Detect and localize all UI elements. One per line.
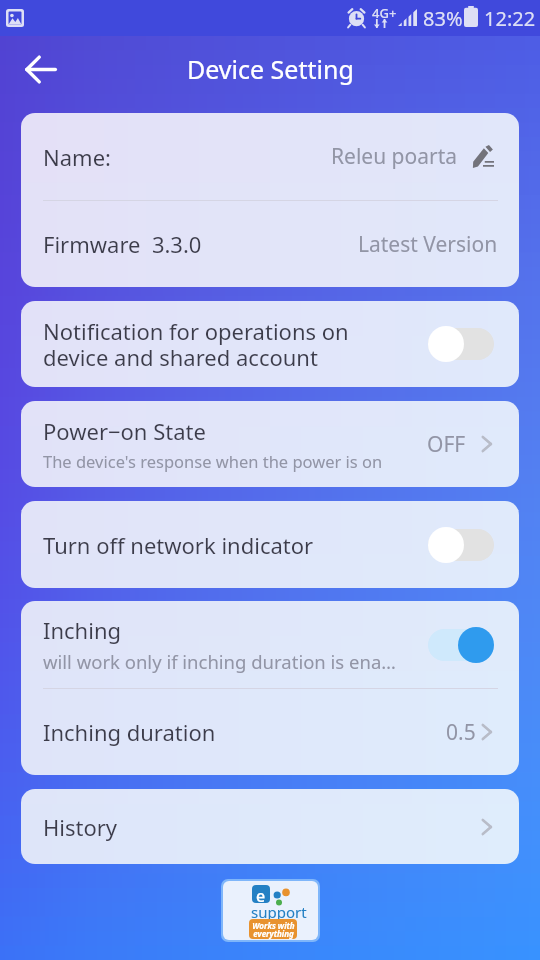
staticText: Latest Version (358, 230, 498, 259)
staticText: Power−on State (43, 416, 206, 446)
button[interactable]: Power−on State (21, 401, 519, 487)
button[interactable]: History (21, 789, 519, 864)
staticText: Device Setting (187, 52, 354, 86)
button[interactable]: Back (9, 38, 71, 100)
staticText: The device's response when the power is … (43, 450, 383, 472)
other: Edit name (472, 145, 494, 169)
staticText: History (43, 812, 118, 842)
button[interactable]: Notification for operations on device an… (21, 301, 519, 387)
button[interactable]: Toggle off (428, 326, 494, 362)
button[interactable]: Toggle on (428, 627, 494, 663)
staticText: OFF (427, 430, 466, 459)
staticText: Firmware 3.3.0 (43, 229, 202, 259)
staticText: Name: (43, 142, 111, 172)
button[interactable]: Inching (21, 601, 519, 688)
staticText: 12:22 (484, 5, 536, 32)
staticText: 83% (423, 5, 463, 32)
button[interactable]: eWeLink support, works with everything (223, 881, 318, 940)
staticText: Releu poarta (331, 142, 458, 171)
staticText: support (251, 902, 307, 922)
button[interactable]: Toggle off (428, 527, 494, 563)
staticText: e (256, 885, 266, 903)
button[interactable]: Name: (21, 113, 519, 200)
staticText: Works with everything (252, 920, 295, 939)
button[interactable]: Turn off network indicator (21, 501, 519, 588)
staticText: Notification for operations on device an… (43, 316, 349, 373)
staticText: Inching (43, 615, 122, 645)
staticText: Inching duration (43, 717, 216, 747)
staticText: 0.5 (446, 718, 476, 747)
staticText: will work only if inching duration is en… (43, 649, 396, 674)
staticText: 4G+ (372, 4, 397, 22)
staticText: Turn off network indicator (43, 530, 314, 560)
button[interactable]: Inching duration (21, 689, 519, 775)
